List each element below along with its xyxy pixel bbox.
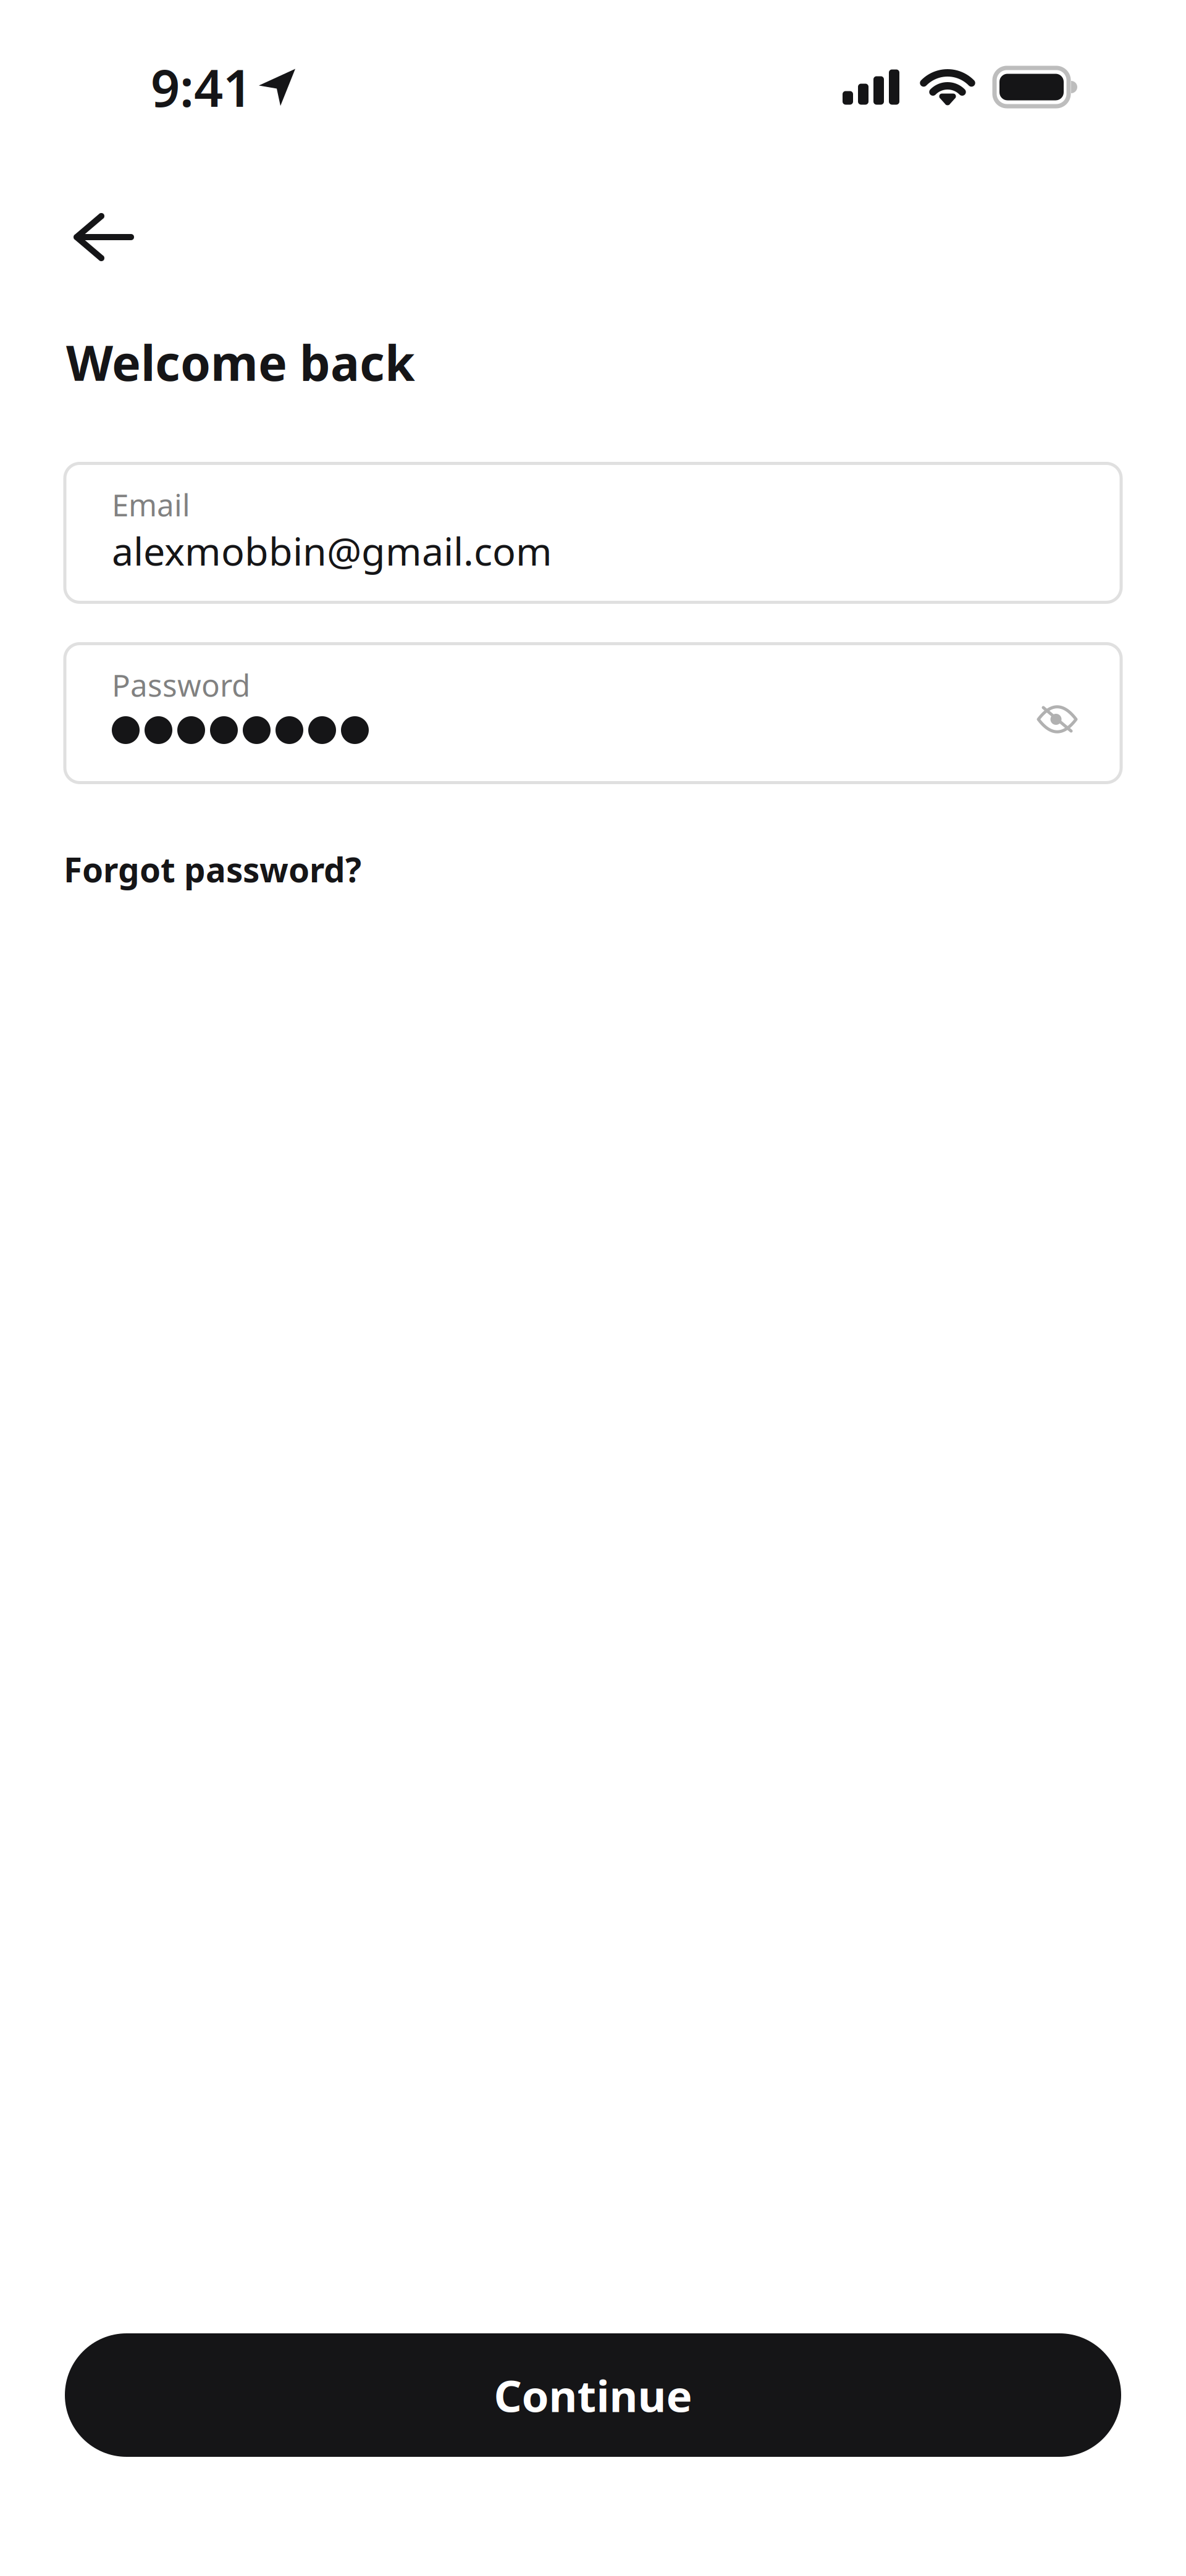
staticText: Welcome back — [66, 330, 415, 394]
button[interactable]: Back — [55, 194, 153, 280]
staticText: Password — [112, 665, 250, 705]
staticText: Email — [112, 484, 190, 525]
button[interactable]: Continue — [65, 2333, 1121, 2457]
button[interactable]: Show password — [1019, 680, 1096, 746]
staticText: alexmobbin@gmail.com — [112, 525, 552, 576]
staticText: Continue — [494, 2366, 692, 2424]
button[interactable]: Forgot password? — [64, 847, 361, 892]
staticText: 9:41 — [151, 53, 252, 121]
staticText: Forgot password? — [64, 847, 361, 892]
